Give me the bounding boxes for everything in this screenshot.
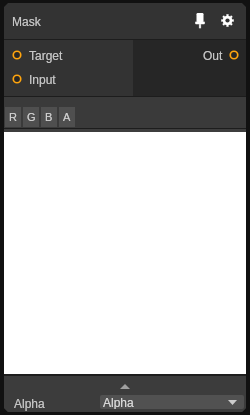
button[interactable]: Pin [189, 8, 211, 34]
staticText: G [27, 111, 36, 123]
staticText: B [45, 111, 53, 123]
button[interactable]: Alpha [100, 395, 244, 409]
staticText: Mask [12, 15, 41, 28]
button[interactable]: A [59, 107, 75, 127]
button[interactable]: B [41, 107, 57, 127]
staticText: Alpha [103, 396, 134, 409]
button[interactable]: Collapse [109, 376, 141, 394]
staticText: Alpha [14, 397, 45, 410]
button[interactable]: Settings [216, 7, 238, 33]
staticText: A [63, 111, 71, 123]
button[interactable]: G [23, 107, 39, 127]
staticText: Out [203, 49, 223, 62]
staticText: Input [29, 73, 56, 86]
button[interactable]: Target [4, 43, 133, 67]
button[interactable]: R [5, 107, 21, 127]
staticText: Target [29, 49, 63, 62]
button[interactable]: Out [133, 43, 246, 67]
staticText: R [9, 111, 17, 123]
button[interactable]: Input [4, 67, 133, 91]
